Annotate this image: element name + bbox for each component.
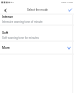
button[interactable]: Back [1,6,9,14]
staticText: More [2,46,10,50]
button[interactable]: Confirm [66,6,74,14]
staticText: Select the mode [27,8,48,11]
button[interactable]: More [0,42,74,54]
button[interactable]: Soft [0,30,74,42]
staticText: 100% 10:05 [61,1,73,4]
staticText: Intensive warning tone of minute [2,20,43,23]
staticText: Soft warning tone for minutes [2,36,39,39]
staticText: Soft [2,31,9,35]
staticText: Intense [2,15,14,19]
button[interactable]: Intense [0,14,74,26]
